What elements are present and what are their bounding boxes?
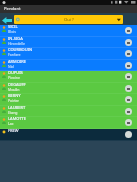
button[interactable]: Back (0, 15, 13, 25)
button[interactable]: Message (125, 73, 132, 80)
staticText: ARMOIRE (8, 59, 26, 64)
staticText: Hirondelle (8, 41, 26, 46)
staticText: LAMOTTE (8, 116, 27, 121)
staticText: FREW (8, 128, 19, 133)
staticText: Nid (8, 64, 14, 69)
button[interactable]: COURBOUIN (0, 48, 137, 60)
button[interactable]: IN-SIGA (0, 37, 137, 48)
button[interactable]: Message (125, 50, 132, 57)
staticText: Oui ? (64, 17, 74, 23)
button[interactable]: Message (125, 108, 132, 115)
staticText: Etang (8, 110, 18, 115)
button[interactable]: Message (125, 39, 132, 46)
button[interactable]: Message (125, 85, 132, 92)
staticText: SICIL (8, 24, 18, 29)
staticText: Pivoine (8, 75, 20, 80)
staticText: Blois (8, 29, 16, 34)
staticText: BERNY (8, 93, 21, 98)
staticText: IN-SIGA (8, 36, 23, 41)
button[interactable]: DUPUIS (0, 71, 137, 83)
button[interactable]: Oui ? (14, 15, 123, 24)
staticText: Lac (8, 121, 14, 126)
button[interactable]: DEGAUFF (0, 83, 137, 94)
button[interactable]: ARMOIRE (0, 60, 137, 71)
button[interactable]: LAUBERT (0, 106, 137, 117)
staticText: LAUBERT (8, 105, 26, 110)
button[interactable]: Message (125, 27, 132, 34)
staticText: Pendant (4, 6, 21, 12)
button[interactable]: Message (125, 62, 132, 69)
staticText: Poirier (8, 98, 19, 103)
staticText: DUPUIS (8, 70, 23, 75)
staticText: Fanfare (8, 52, 21, 57)
button[interactable]: Message (125, 131, 132, 138)
button[interactable]: LAMOTTE (0, 117, 137, 129)
staticText: COURBOUIN (8, 47, 33, 52)
button[interactable]: FREW (0, 129, 137, 141)
staticText: Moulin (8, 87, 20, 92)
staticText: DEGAUFF (8, 82, 26, 87)
button[interactable]: BERNY (0, 94, 137, 106)
button[interactable]: Message (125, 119, 132, 126)
button[interactable]: SICIL (0, 25, 137, 37)
button[interactable]: Message (125, 96, 132, 103)
